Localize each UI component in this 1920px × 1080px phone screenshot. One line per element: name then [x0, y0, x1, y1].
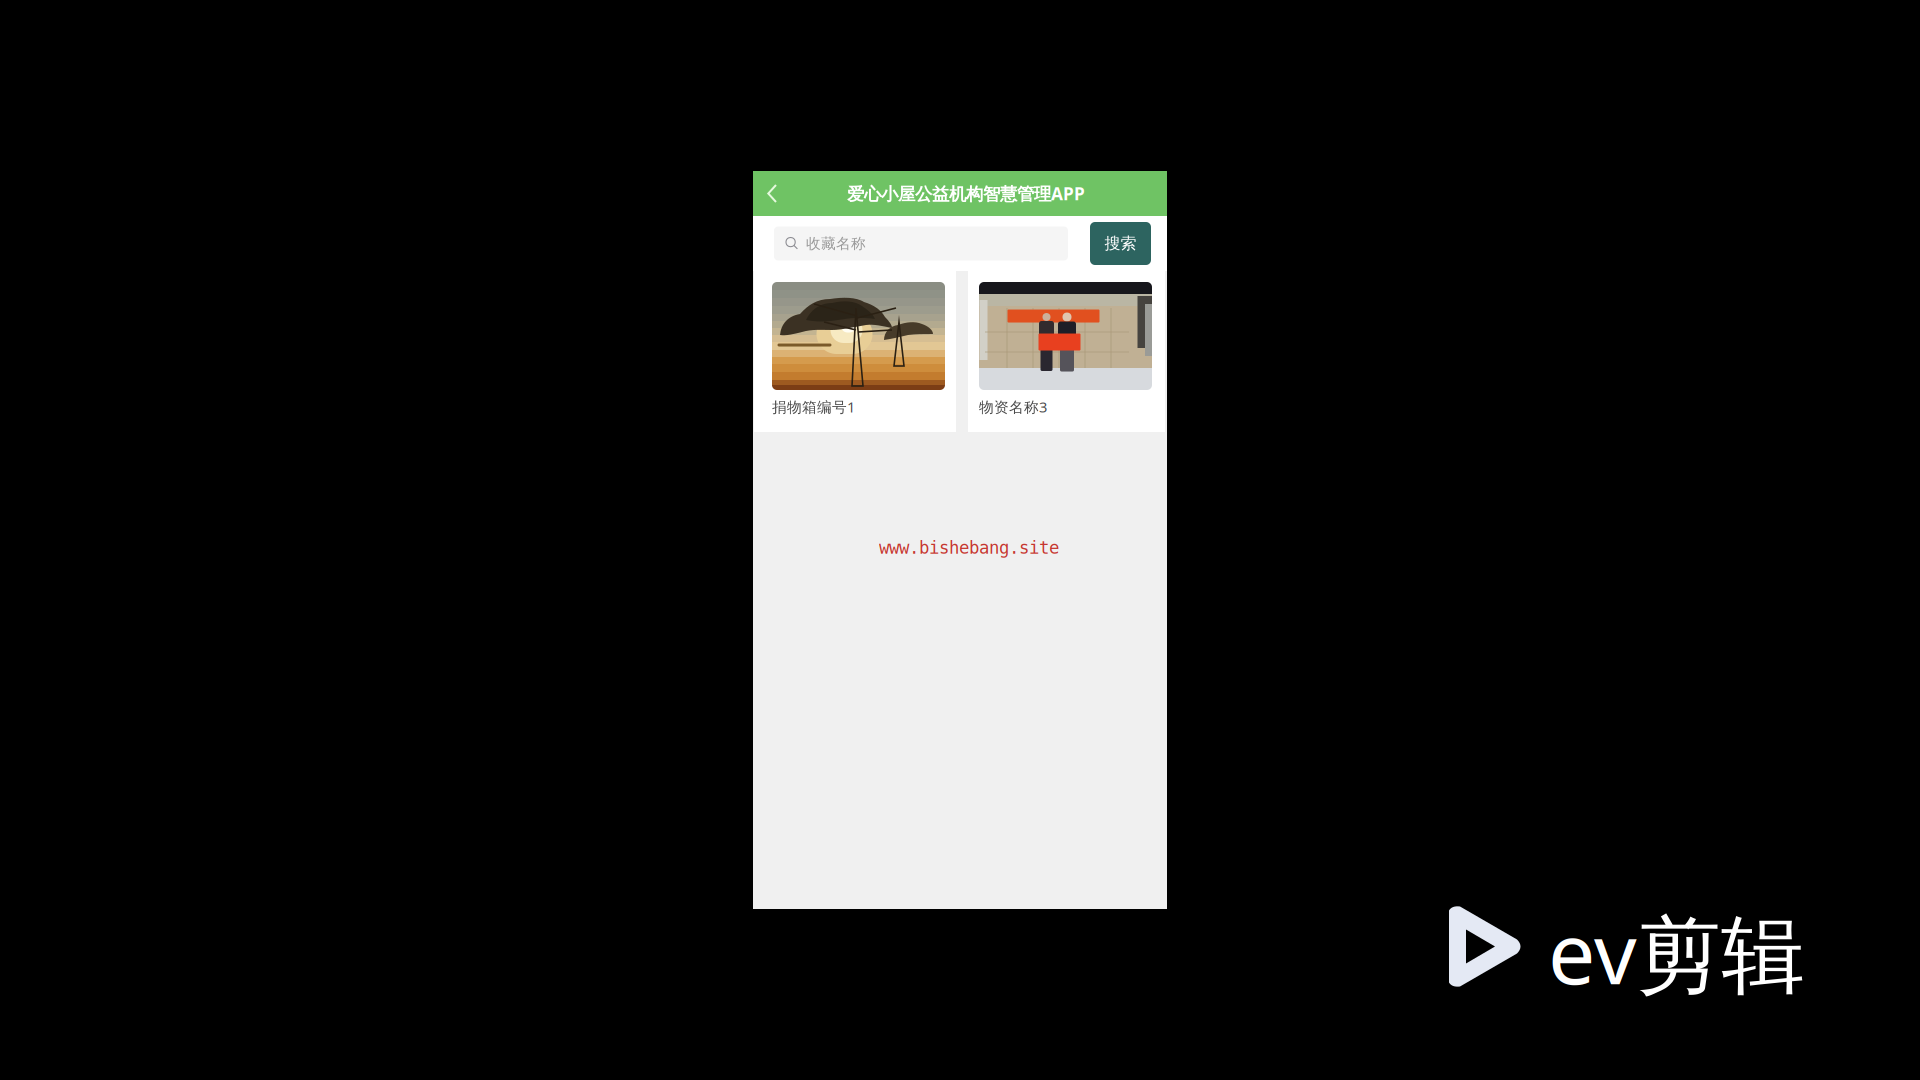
staticText: 捐物箱编号1 — [772, 397, 855, 416]
button[interactable]: 返回 — [753, 171, 791, 215]
staticText: www.bishebang.site — [879, 538, 1059, 558]
staticText: 爱心小屋公益机构智慧管理APP — [847, 182, 1085, 205]
staticText: 收藏名称 — [806, 234, 866, 252]
staticText: 物资名称3 — [979, 397, 1047, 416]
button[interactable]: 物资名称3 — [968, 271, 1165, 432]
button[interactable]: 捐物箱编号1 — [754, 271, 956, 432]
staticText: ev剪辑 — [1548, 896, 1805, 1008]
button[interactable]: 搜索 — [1090, 222, 1151, 265]
staticText: 搜索 — [1104, 234, 1136, 253]
